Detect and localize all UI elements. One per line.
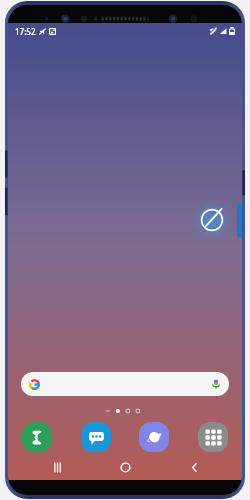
button[interactable]: Apps — [198, 422, 228, 452]
button[interactable]: Edge panel — [237, 203, 242, 237]
button[interactable]: Home — [105, 456, 145, 478]
button[interactable]: Phone — [22, 422, 52, 452]
other: Google Search — [29, 379, 40, 390]
button[interactable]: Internet — [139, 422, 169, 452]
button[interactable]: Messages — [81, 422, 111, 452]
button[interactable]: Google Search — [21, 372, 229, 396]
other: S Pen cursor — [192, 200, 232, 240]
button[interactable]: Back — [174, 456, 214, 478]
staticText: 17:52 — [15, 26, 36, 37]
other: Voice search — [211, 379, 221, 389]
button[interactable]: Recents — [37, 456, 77, 478]
